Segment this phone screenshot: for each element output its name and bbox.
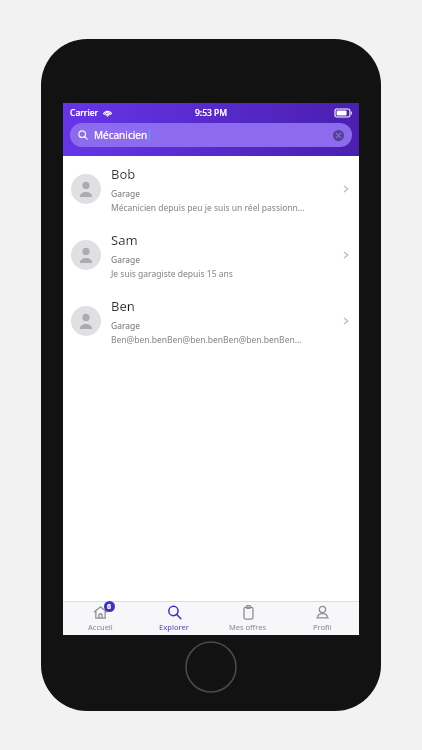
staticText: Garage (111, 320, 141, 332)
button[interactable]: Ben (63, 288, 359, 354)
staticText: Accueil (88, 622, 113, 632)
staticText: Sam (111, 231, 138, 249)
staticText: Profil (313, 622, 332, 632)
staticText: 9:53 PM (195, 107, 228, 119)
other: Mes offres (241, 605, 256, 620)
button[interactable]: Sam (63, 222, 359, 288)
staticText: Explorer (159, 622, 190, 632)
button[interactable]: Explorer (137, 602, 211, 635)
staticText: Mécanicien (94, 128, 148, 142)
other: Explorer (167, 605, 182, 620)
staticText: Ben@ben.benBen@ben.benBen@ben.benBen… (111, 334, 302, 346)
staticText: 6 (107, 602, 112, 612)
staticText: Ben (111, 297, 135, 315)
staticText: Carrier (70, 107, 99, 119)
staticText: Je suis garagiste depuis 15 ans (111, 268, 233, 280)
other: Accueil (93, 605, 108, 620)
button[interactable]: Profil (285, 602, 359, 635)
other: Profil (315, 605, 330, 620)
staticText: Garage (111, 188, 141, 200)
staticText: Bob (111, 165, 136, 183)
staticText: Mes offres (229, 622, 267, 632)
button[interactable]: Bob (63, 156, 359, 222)
staticText: Garage (111, 254, 141, 266)
staticText: Mécanicien depuis peu je suis un réel pa… (111, 202, 305, 214)
button[interactable]: Accueil (63, 602, 137, 635)
button[interactable]: Mes offres (211, 602, 285, 635)
button[interactable]: Mécanicien (70, 123, 352, 147)
